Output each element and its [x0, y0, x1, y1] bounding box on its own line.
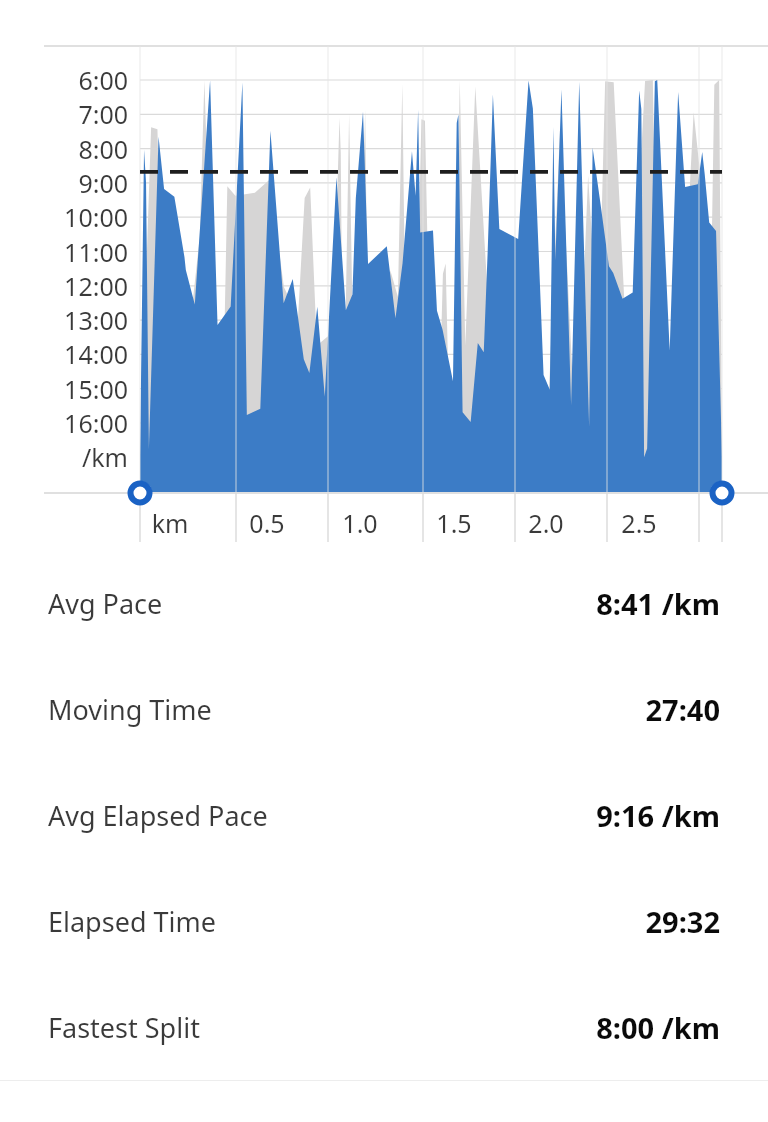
staticText: 27:40: [645, 690, 720, 729]
staticText: 10:00: [0, 200, 128, 234]
staticText: 9:16 /km: [596, 796, 720, 835]
staticText: 1.0: [310, 506, 410, 540]
staticText: 13:00: [0, 303, 128, 337]
button[interactable]: Avg Elapsed Pace: [0, 762, 768, 868]
button[interactable]: Elapsed Time: [0, 868, 768, 974]
staticText: 14:00: [0, 337, 128, 371]
staticText: Avg Pace: [48, 585, 163, 622]
staticText: 15:00: [0, 372, 128, 406]
staticText: 29:32: [645, 902, 720, 941]
staticText: 9:00: [0, 166, 128, 200]
staticText: 16:00: [0, 406, 128, 440]
staticText: 8:41 /km: [596, 584, 720, 623]
staticText: 0.5: [217, 506, 317, 540]
button[interactable]: Moving Time: [0, 656, 768, 762]
staticText: 8:00: [0, 132, 128, 166]
staticText: 12:00: [0, 269, 128, 303]
staticText: Avg Elapsed Pace: [48, 797, 268, 834]
staticText: km: [120, 506, 220, 540]
staticText: 2.0: [496, 506, 596, 540]
other: Pace over distance chart: [0, 0, 768, 550]
staticText: Fastest Split: [48, 1009, 200, 1046]
staticText: 1.5: [404, 506, 504, 540]
staticText: Elapsed Time: [48, 903, 216, 940]
staticText: /km: [0, 440, 128, 474]
staticText: 6:00: [0, 63, 128, 97]
staticText: 8:00 /km: [596, 1008, 720, 1047]
staticText: 7:00: [0, 97, 128, 131]
staticText: 11:00: [0, 235, 128, 269]
staticText: Moving Time: [48, 691, 212, 728]
button[interactable]: Fastest Split: [0, 974, 768, 1080]
button[interactable]: Avg Pace: [0, 550, 768, 656]
staticText: 2.5: [589, 506, 689, 540]
